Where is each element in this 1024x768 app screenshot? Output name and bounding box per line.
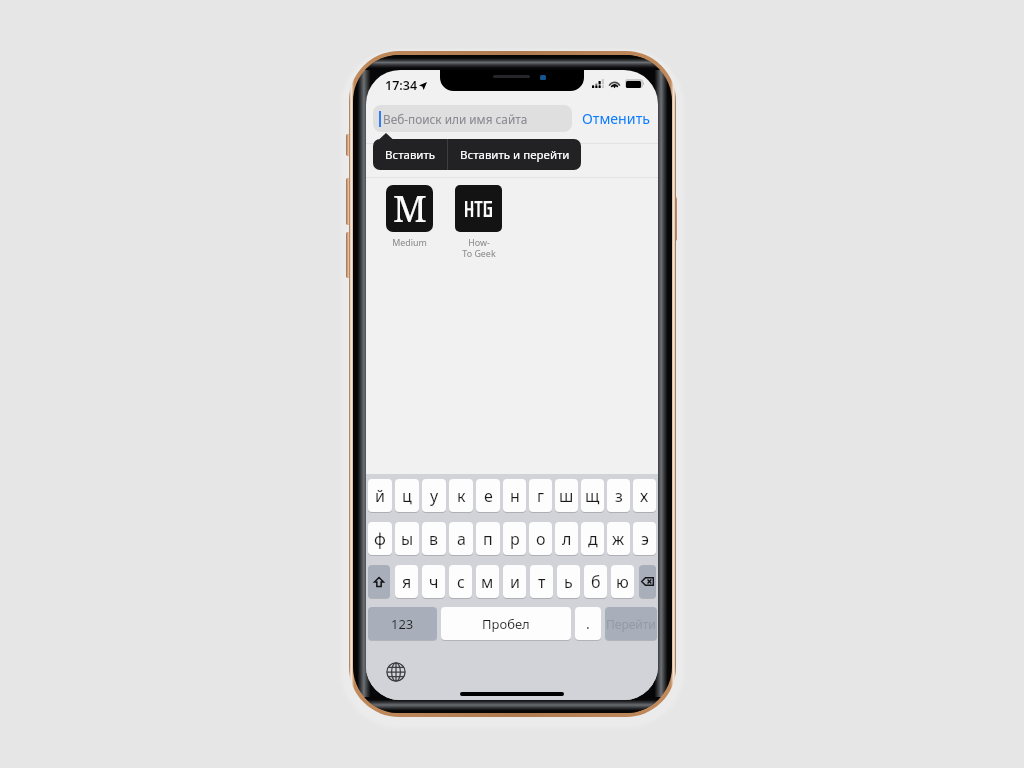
button[interactable]: й (368, 479, 392, 513)
staticText: и (510, 571, 520, 593)
staticText: Отменить (582, 109, 650, 128)
staticText: Перейти (606, 616, 656, 632)
staticText: ю (616, 571, 629, 593)
staticText: How- To Geek (462, 236, 496, 260)
staticText: р (510, 528, 520, 550)
staticText: а (457, 528, 466, 550)
staticText: о (536, 528, 546, 550)
staticText: ц (402, 485, 412, 507)
staticText: х (640, 485, 649, 507)
staticText: п (483, 528, 493, 550)
button[interactable]: M (386, 185, 433, 248)
button[interactable]: п (476, 522, 500, 556)
staticText: ф (374, 528, 386, 550)
button[interactable]: г (529, 479, 552, 513)
staticText: . (586, 614, 590, 633)
staticText: е (484, 485, 493, 507)
staticText: т (538, 571, 546, 593)
button[interactable]: н (503, 479, 526, 513)
button[interactable]: ф (368, 522, 392, 556)
button[interactable]: ы (395, 522, 419, 556)
button[interactable]: у (422, 479, 446, 513)
staticText: M (393, 185, 427, 231)
button[interactable]: Пробел (441, 607, 571, 641)
staticText: Вставить и перейти (460, 147, 570, 163)
button[interactable]: а (449, 522, 473, 556)
button[interactable]: Вставить и перейти (448, 139, 581, 170)
button[interactable]: ц (395, 479, 419, 513)
staticText: с (457, 571, 465, 593)
button[interactable]: д (581, 522, 604, 556)
button[interactable]: ю (611, 565, 634, 599)
button[interactable]: Веб-поиск или имя сайта (373, 105, 572, 132)
button[interactable]: б (584, 565, 607, 599)
button[interactable]: How- To Geek (455, 185, 502, 260)
staticText: в (429, 528, 439, 550)
button[interactable]: о (529, 522, 552, 556)
staticText: л (562, 528, 572, 550)
button[interactable]: т (530, 565, 553, 599)
staticText: к (457, 485, 466, 507)
button[interactable]: Switch keyboard (386, 662, 406, 682)
button[interactable]: Вставить (373, 139, 447, 170)
staticText: ч (429, 571, 439, 593)
button[interactable]: ь (557, 565, 580, 599)
button[interactable]: р (503, 522, 526, 556)
button[interactable]: Перейти (605, 607, 657, 641)
staticText: 17:34 (385, 77, 418, 94)
staticText: Пробел (482, 615, 530, 633)
staticText: д (588, 528, 598, 550)
button[interactable]: е (476, 479, 500, 513)
staticText: 123 (391, 615, 414, 633)
staticText: у (430, 485, 439, 507)
staticText: м (481, 571, 494, 593)
staticText: э (641, 528, 649, 550)
button[interactable]: Shift (368, 565, 390, 599)
button[interactable]: Отменить (580, 107, 652, 130)
button[interactable]: ж (607, 522, 630, 556)
button[interactable]: щ (581, 479, 604, 513)
staticText: ж (612, 528, 625, 550)
button[interactable]: к (449, 479, 473, 513)
staticText: ь (564, 571, 573, 593)
button[interactable]: э (633, 522, 656, 556)
button[interactable]: я (395, 565, 418, 599)
staticText: г (537, 485, 545, 507)
staticText: Medium (392, 236, 427, 248)
button[interactable]: . (575, 607, 601, 641)
staticText: щ (585, 485, 600, 507)
button[interactable]: з (607, 479, 630, 513)
button[interactable]: и (503, 565, 526, 599)
staticText: н (510, 485, 520, 507)
button[interactable]: ш (555, 479, 578, 513)
staticText: й (375, 485, 385, 507)
staticText: б (591, 571, 601, 593)
button[interactable]: 123 (368, 607, 437, 641)
button[interactable]: Backspace (639, 565, 656, 599)
staticText: Веб-поиск или имя сайта (383, 111, 528, 127)
button[interactable]: в (422, 522, 446, 556)
button[interactable]: ч (422, 565, 445, 599)
staticText: Вставить (385, 147, 436, 163)
button[interactable]: л (555, 522, 578, 556)
button[interactable]: м (476, 565, 499, 599)
staticText: ы (401, 528, 414, 550)
staticText: я (402, 571, 412, 593)
button[interactable]: х (633, 479, 656, 513)
button[interactable]: с (449, 565, 472, 599)
staticText: ш (559, 485, 574, 507)
staticText: з (615, 485, 623, 507)
